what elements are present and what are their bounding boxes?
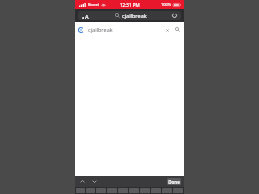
button[interactable]: Next field: [91, 178, 98, 185]
button[interactable]: Page settings: [78, 11, 181, 20]
staticText: A: [85, 13, 89, 20]
button[interactable]: Reload: [171, 12, 178, 19]
staticText: cjailbreak: [88, 26, 164, 33]
button[interactable]: Previous field: [79, 178, 86, 185]
button[interactable]: Site logo: [78, 24, 181, 35]
staticText: Boost: [88, 2, 99, 7]
button[interactable]: Page settings: [81, 12, 90, 20]
staticText: Done: [168, 179, 180, 185]
button[interactable]: Clear text: [164, 27, 170, 33]
staticText: cjailbreak: [122, 12, 147, 19]
staticText: 100%: [161, 2, 172, 7]
button[interactable]: Search: [174, 26, 181, 33]
staticText: 12:31 PM: [120, 2, 140, 8]
button[interactable]: Done: [167, 178, 181, 185]
staticText: a: [82, 15, 85, 20]
button[interactable]: Site logo: [78, 27, 84, 33]
